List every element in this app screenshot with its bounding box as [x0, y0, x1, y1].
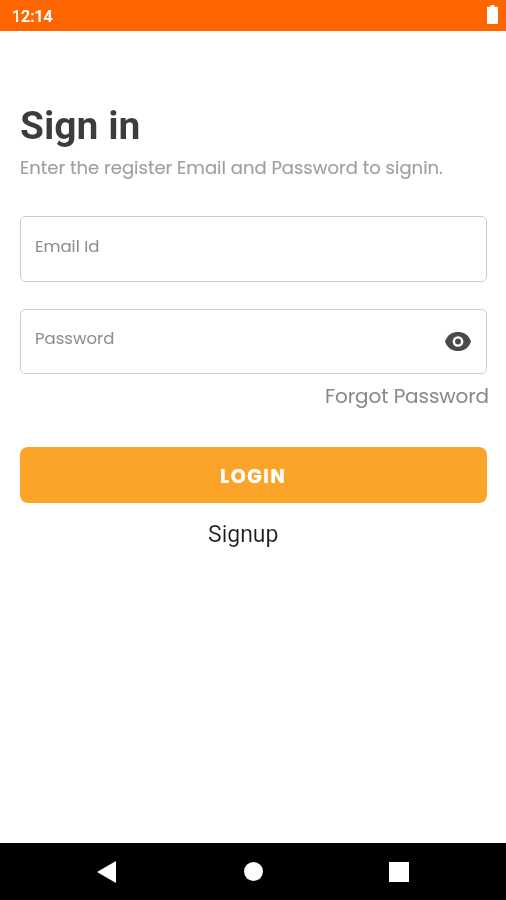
staticText: Password: [35, 327, 115, 350]
staticText: Enter the register Email and Password to…: [20, 155, 443, 180]
button[interactable]: Home: [211, 843, 295, 900]
staticText: Sign in: [20, 103, 141, 149]
staticText: Email Id: [35, 235, 100, 258]
button[interactable]: Show password: [436, 319, 480, 363]
button[interactable]: Password: [20, 309, 487, 374]
button[interactable]: LOGIN: [20, 447, 487, 503]
staticText: 12:14: [12, 7, 53, 26]
button[interactable]: Forgot Password: [20, 380, 489, 412]
button[interactable]: Signup: [202, 519, 285, 550]
button[interactable]: Back: [64, 843, 148, 900]
staticText: LOGIN: [220, 463, 287, 490]
button[interactable]: Recents: [357, 843, 441, 900]
staticText: Forgot Password: [325, 382, 489, 410]
button[interactable]: Email Id: [20, 216, 487, 282]
